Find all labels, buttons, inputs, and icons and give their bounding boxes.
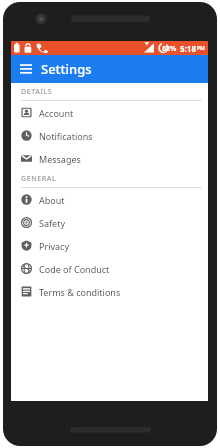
- button[interactable]: Notifications: [11, 124, 208, 147]
- button[interactable]: Safety: [11, 211, 208, 234]
- button[interactable]: Account: [11, 101, 208, 124]
- button[interactable]: Terms & conditions: [11, 280, 208, 303]
- staticText: Account: [39, 107, 74, 119]
- staticText: Terms & conditions: [39, 286, 121, 298]
- staticText: Safety: [39, 217, 66, 229]
- button[interactable]: Messages: [11, 147, 208, 170]
- button[interactable]: Open navigation menu: [17, 60, 35, 78]
- button[interactable]: Privacy: [11, 234, 208, 257]
- staticText: Notifications: [39, 130, 93, 142]
- staticText: Messages: [39, 153, 81, 165]
- staticText: Privacy: [39, 240, 70, 252]
- staticText: Settings: [41, 60, 92, 78]
- staticText: About: [39, 194, 65, 206]
- staticText: GENERAL: [21, 174, 57, 184]
- staticText: 5:18: [180, 43, 196, 54]
- staticText: DETAILS: [21, 87, 53, 97]
- staticText: 68%: [162, 44, 177, 54]
- button[interactable]: Code of Conduct: [11, 257, 208, 280]
- button[interactable]: About: [11, 188, 208, 211]
- staticText: Code of Conduct: [39, 263, 110, 275]
- staticText: PM: [197, 45, 205, 52]
